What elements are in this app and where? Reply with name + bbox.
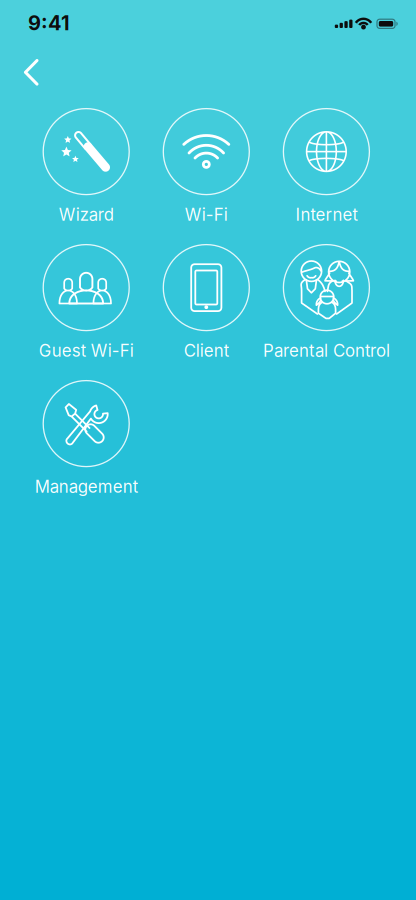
button[interactable]: Client	[0, 0, 118, 118]
button[interactable]: Wi-Fi	[0, 0, 118, 118]
staticText: Wizard	[59, 204, 114, 225]
button[interactable]: Guest Wi-Fi	[0, 0, 118, 118]
staticText: Internet	[295, 204, 357, 225]
staticText: Parental Control	[263, 340, 390, 361]
staticText: 9:41	[28, 11, 70, 35]
button[interactable]: Parental Control	[0, 0, 118, 118]
staticText: Wi-Fi	[185, 204, 228, 225]
button[interactable]: Internet	[0, 0, 118, 118]
staticText: Management	[35, 476, 138, 497]
staticText: Guest Wi-Fi	[39, 340, 134, 361]
button[interactable]: Wizard	[0, 0, 118, 118]
staticText: Client	[184, 340, 229, 361]
button[interactable]: Back	[0, 0, 48, 48]
button[interactable]: Management	[0, 0, 118, 118]
